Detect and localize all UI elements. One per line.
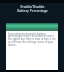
staticText: Enable/Disable Battery Percentage (17, 4, 48, 13)
staticText: Some phones show the battery percentage … (8, 32, 57, 47)
